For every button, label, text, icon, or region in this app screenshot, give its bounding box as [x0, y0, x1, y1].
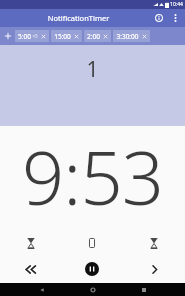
staticText: 9:53 [22, 126, 163, 210]
button[interactable]: Pause [61, 257, 123, 281]
button[interactable]: Home [83, 283, 103, 296]
button[interactable]: Timer duration [0, 231, 61, 255]
staticText: 10:44 [170, 1, 183, 8]
button[interactable]: 15:00 [51, 30, 82, 42]
button[interactable]: 9:53 [0, 126, 185, 210]
button[interactable]: Previous [0, 257, 61, 281]
button[interactable]: More options [167, 10, 183, 26]
staticText: 3:30:00 [116, 32, 139, 41]
button[interactable]: Vibrate [61, 231, 123, 255]
button[interactable]: Next [123, 257, 185, 281]
staticText: 1 [86, 55, 99, 84]
staticText: ×5 [32, 33, 38, 39]
button[interactable]: 5:00 [15, 30, 49, 42]
button[interactable]: Back [32, 283, 52, 296]
button[interactable]: Total duration [123, 231, 185, 255]
button[interactable]: Info [151, 10, 167, 26]
button[interactable]: 3:30:00 [113, 30, 150, 42]
button[interactable]: 2:00 [84, 30, 111, 42]
staticText: 15:00 [54, 32, 71, 41]
staticText: 2:00 [87, 32, 100, 41]
button[interactable]: Add timer [0, 27, 15, 45]
staticText: NotificationTimer [6, 13, 151, 23]
button[interactable]: Recent apps [134, 283, 154, 296]
staticText: 5:00 [18, 32, 31, 41]
